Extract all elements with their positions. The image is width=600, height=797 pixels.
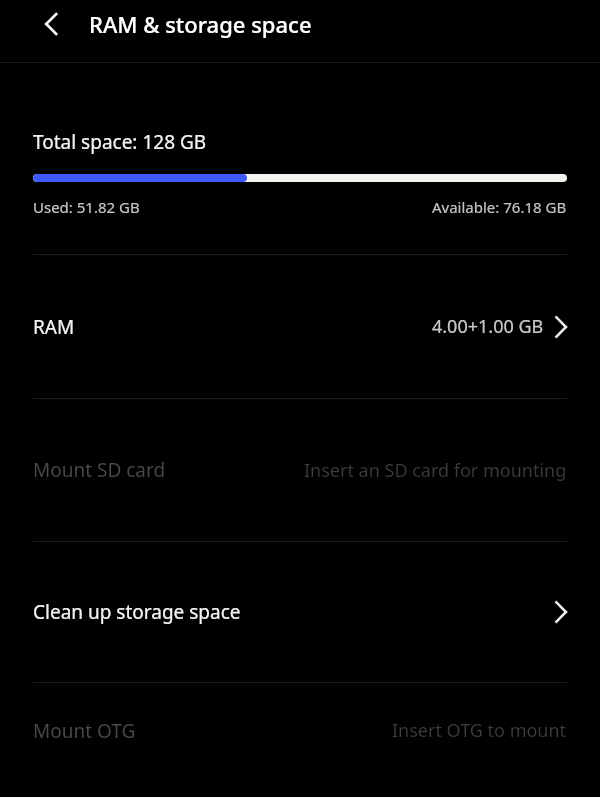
staticText: RAM & storage space [89, 9, 312, 39]
staticText: 4.00+1.00 GB [432, 314, 544, 339]
staticText: Insert an SD card for mounting [304, 458, 567, 483]
staticText: Mount SD card [33, 457, 166, 483]
staticText: Clean up storage space [33, 599, 241, 625]
staticText: Insert OTG to mount [392, 718, 567, 743]
button[interactable]: Back [28, 0, 76, 48]
button[interactable]: RAM [0, 255, 600, 398]
staticText: Total space: 128 GB [33, 129, 207, 155]
staticText: RAM [33, 314, 75, 340]
staticText: Mount OTG [33, 718, 136, 744]
button[interactable]: Clean up storage space [0, 542, 600, 682]
staticText: Used: 51.82 GB [33, 197, 140, 217]
button[interactable]: Mount OTG [0, 683, 600, 778]
button[interactable]: Mount SD card [0, 399, 600, 541]
staticText: Available: 76.18 GB [432, 197, 567, 217]
